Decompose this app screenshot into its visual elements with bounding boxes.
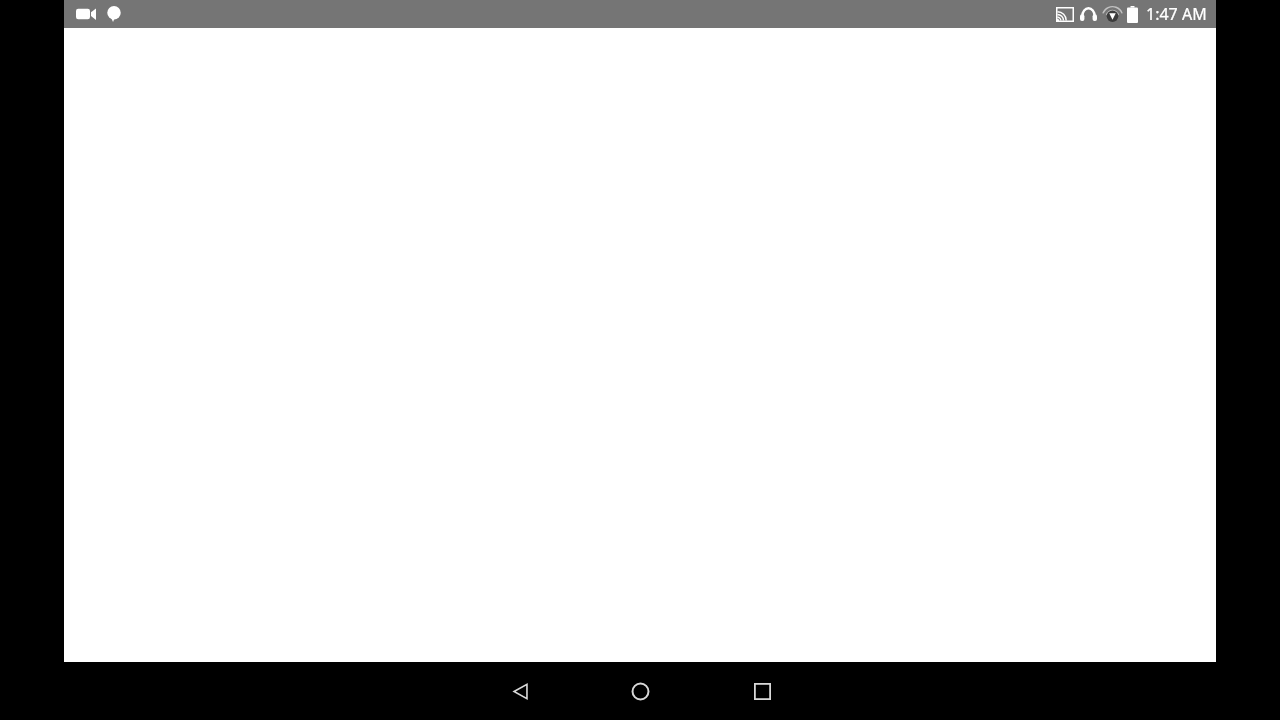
other: Video call notification [75, 4, 97, 24]
other: Location [1102, 4, 1122, 24]
other: Battery full [1126, 5, 1139, 24]
other: Message notification [104, 4, 124, 24]
button[interactable]: Recent apps [740, 669, 784, 713]
other: Cast [1054, 4, 1075, 24]
button[interactable]: Home [618, 669, 662, 713]
other: Headphones connected [1078, 4, 1099, 24]
button[interactable]: Back [498, 669, 542, 713]
staticText: 1:47 AM [1146, 3, 1207, 25]
